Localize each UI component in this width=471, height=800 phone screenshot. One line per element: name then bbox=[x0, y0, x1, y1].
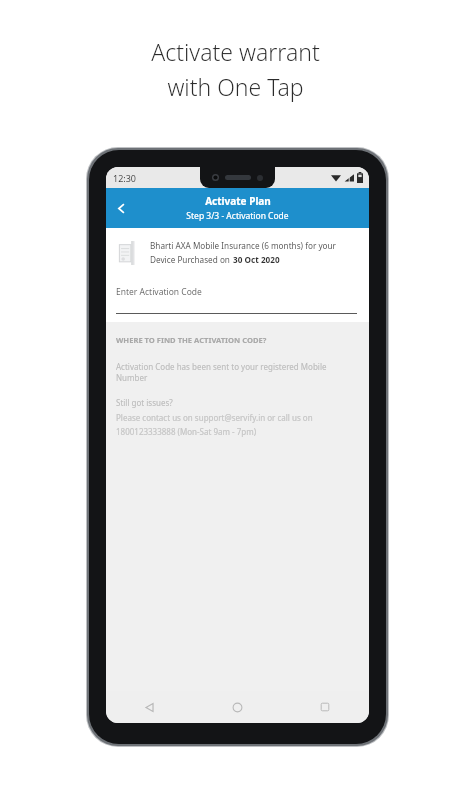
staticText: Still got issues? bbox=[116, 397, 173, 408]
button[interactable]: Recent apps bbox=[281, 691, 369, 723]
staticText: Bharti AXA Mobile Insurance (6 months) f… bbox=[150, 240, 337, 251]
staticText: 1800123333888 (Mon-Sat 9am - 7pm) bbox=[116, 426, 257, 437]
button[interactable]: Back bbox=[106, 691, 193, 723]
button[interactable]: Home bbox=[193, 691, 281, 723]
staticText: Please contact us on support@servify.in … bbox=[116, 412, 313, 423]
staticText: 30 Oct 2020 bbox=[233, 254, 280, 265]
staticText: 12:30 bbox=[113, 172, 137, 184]
staticText: Activate warrant bbox=[151, 36, 320, 67]
staticText: Device Purchased on bbox=[150, 254, 233, 265]
staticText: WHERE TO FIND THE ACTIVATION CODE? bbox=[116, 335, 267, 345]
staticText: Step 3/3 - Activation Code bbox=[186, 210, 289, 222]
button[interactable]: Back bbox=[106, 193, 136, 223]
button[interactable]: Bharti AXA Mobile Insurance (6 months) f… bbox=[106, 228, 369, 276]
staticText: Enter Activation Code bbox=[116, 286, 202, 298]
staticText: Activate Plan bbox=[205, 194, 271, 208]
staticText: with One Tap bbox=[167, 71, 304, 102]
staticText: Activation Code has been sent to your re… bbox=[116, 361, 357, 383]
button[interactable]: Enter Activation Code bbox=[106, 276, 369, 322]
